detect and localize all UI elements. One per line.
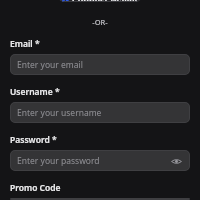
button[interactable]: Enter your email: [10, 54, 190, 75]
staticText: Email: [10, 38, 33, 50]
staticText: *: [35, 38, 40, 50]
staticText: *: [52, 134, 57, 146]
staticText: Enter your username: [17, 107, 102, 119]
staticText: *: [55, 86, 60, 98]
button[interactable]: Connect Wallet: [58, 0, 142, 2]
staticText: Password: [10, 134, 50, 146]
button[interactable]: Enter your password: [10, 150, 190, 171]
staticText: Enter your email: [17, 59, 83, 71]
staticText: Connect Wallet: [72, 0, 139, 2]
button[interactable]: Enter your username: [10, 102, 190, 123]
button[interactable]: Show password: [169, 154, 183, 168]
staticText: Promo Code: [10, 182, 61, 194]
staticText: -OR-: [92, 17, 108, 27]
staticText: Username: [10, 86, 53, 98]
staticText: Enter your password: [17, 155, 100, 167]
